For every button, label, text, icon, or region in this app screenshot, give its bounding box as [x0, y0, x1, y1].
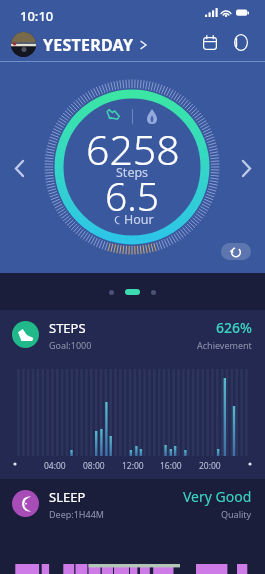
- staticText: Goal:1000: [49, 339, 92, 351]
- staticText: Hour: [124, 211, 154, 228]
- button[interactable]: YESTERDAY: [11, 32, 151, 57]
- button[interactable]: Next day: [233, 155, 259, 181]
- staticText: Achievement: [197, 339, 252, 351]
- button[interactable]: Device: [229, 30, 253, 54]
- staticText: 08:00: [83, 460, 105, 472]
- staticText: 6.5: [105, 169, 160, 222]
- staticText: STEPS: [49, 319, 86, 337]
- button[interactable]: SLEEP: [0, 479, 265, 528]
- button[interactable]: Sync: [221, 243, 251, 260]
- button[interactable]: Calendar: [198, 30, 222, 54]
- button[interactable]: STEPS: [0, 310, 265, 359]
- staticText: Very Good: [183, 487, 252, 506]
- button[interactable]: Previous day: [6, 155, 32, 181]
- staticText: Deep:1H44M: [49, 508, 104, 520]
- staticText: 10:10: [20, 7, 54, 25]
- staticText: SLEEP: [49, 488, 86, 506]
- staticText: 6258: [86, 121, 180, 177]
- staticText: 16:00: [160, 460, 182, 472]
- staticText: 12:00: [122, 460, 144, 472]
- staticText: 04:00: [44, 460, 66, 472]
- staticText: 20:00: [199, 460, 221, 472]
- staticText: YESTERDAY: [43, 34, 134, 56]
- staticText: Steps: [116, 164, 149, 181]
- staticText: 626%: [216, 318, 252, 337]
- staticText: Quality: [221, 508, 252, 520]
